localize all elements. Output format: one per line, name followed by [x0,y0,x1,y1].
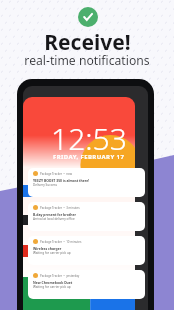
staticText: Waiting for carrier pick up [33,285,71,289]
staticText: Package Tracker • yesterday [40,274,80,278]
staticText: Receive! [44,28,131,57]
staticText: real-time notifications [24,52,150,69]
other: Success [78,7,98,27]
staticText: Delivery Success [33,183,57,187]
staticText: Package Tracker • now [40,172,72,176]
staticText: FRIDAY, FEBRUARY 17 [53,153,125,161]
staticText: Arrival at local delivery office [33,217,75,221]
staticText: B-day present for brother [33,212,76,217]
staticText: New Chromebook Duet [33,280,73,285]
staticText: 12:53 [51,118,127,159]
staticText: Wireless charger [33,246,62,251]
staticText: Package Tracker • 10 minutes [40,240,82,244]
staticText: Waiting for carrier pick up [33,251,71,255]
button[interactable]: Package Tracker • 3 minutes [28,202,145,231]
button[interactable]: Package Tracker • 10 minutes [28,236,145,265]
button[interactable]: Package Tracker • yesterday [28,270,145,299]
staticText: YEEZY BOOST 350 is almost there! [33,178,90,183]
staticText: Package Tracker • 3 minutes [40,206,80,210]
button[interactable]: Package Tracker • now [28,168,145,197]
